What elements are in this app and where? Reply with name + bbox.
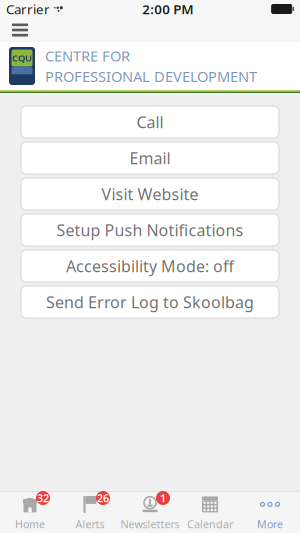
staticText: Accessibility Mode: off (66, 255, 234, 277)
button[interactable]: Menu (5, 18, 35, 42)
button[interactable]: Email (21, 142, 279, 174)
staticText: 26 (97, 491, 109, 505)
button[interactable]: 26 (60, 492, 120, 533)
staticText: Newsletters (120, 517, 179, 531)
button[interactable]: Calendar (180, 492, 240, 533)
button[interactable]: Accessibility Mode: off (21, 250, 279, 282)
staticText: Visit Website (101, 183, 198, 205)
staticText: 32 (37, 491, 49, 505)
staticText: More (257, 517, 283, 531)
staticText: CQU (12, 52, 32, 64)
staticText: PROFESSIONAL DEVELOPMENT (45, 66, 257, 86)
staticText: CENTRE FOR (45, 46, 130, 65)
staticText: Call (136, 111, 163, 133)
button[interactable]: Visit Website (21, 178, 279, 210)
staticText: 2:00 PM (142, 0, 193, 18)
staticText: Alerts (75, 517, 104, 531)
button[interactable]: Setup Push Notifications (21, 214, 279, 246)
button[interactable]: Call (21, 106, 279, 138)
button[interactable]: More (240, 492, 300, 533)
staticText: Send Error Log to Skoolbag (46, 291, 254, 313)
staticText: Home (15, 517, 45, 531)
staticText: Setup Push Notifications (56, 219, 243, 241)
button[interactable]: Send Error Log to Skoolbag (21, 286, 279, 318)
staticText: 1 (160, 491, 166, 505)
staticText: Calendar (187, 517, 233, 531)
staticText: Carrier (6, 0, 50, 18)
button[interactable]: 1 (120, 492, 180, 533)
button[interactable]: 32 (0, 492, 60, 533)
staticText: Email (129, 147, 170, 169)
